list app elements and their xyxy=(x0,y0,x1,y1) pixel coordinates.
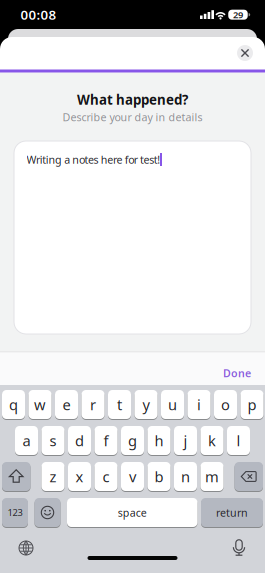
staticText: k xyxy=(208,431,216,450)
button[interactable]: Done xyxy=(223,366,251,380)
staticText: r xyxy=(90,395,96,414)
staticText: w xyxy=(34,395,46,414)
staticText: space xyxy=(118,505,147,520)
button[interactable]: h xyxy=(147,426,170,455)
staticText: z xyxy=(49,467,56,486)
staticText: Done xyxy=(223,366,251,380)
button[interactable]: Emoji xyxy=(34,498,60,527)
staticText: a xyxy=(22,431,30,450)
staticText: p xyxy=(247,395,256,414)
button[interactable]: o xyxy=(214,390,237,419)
button[interactable]: y xyxy=(134,390,157,419)
staticText: s xyxy=(49,431,56,450)
button[interactable]: Delete xyxy=(234,462,263,491)
button[interactable]: j xyxy=(174,426,197,455)
staticText: t xyxy=(117,395,122,414)
button[interactable]: p xyxy=(240,390,263,419)
button[interactable]: z xyxy=(41,462,64,491)
button[interactable]: s xyxy=(41,426,64,455)
staticText: return xyxy=(216,505,248,520)
button[interactable]: Dictation xyxy=(231,539,247,557)
staticText: Writing a notes here for test! xyxy=(26,152,160,167)
staticText: Describe your day in details xyxy=(62,110,202,124)
staticText: e xyxy=(62,395,70,414)
button[interactable]: c xyxy=(94,462,117,491)
button[interactable]: Shift xyxy=(2,462,30,491)
staticText: q xyxy=(9,395,18,414)
button[interactable]: Next keyboard xyxy=(18,540,34,556)
button[interactable]: 123 xyxy=(2,498,28,527)
button[interactable]: e xyxy=(55,390,78,419)
button[interactable]: r xyxy=(81,390,104,419)
button[interactable]: g xyxy=(121,426,144,455)
button[interactable]: l xyxy=(227,426,250,455)
staticText: l xyxy=(236,431,240,450)
button[interactable]: Close xyxy=(237,45,253,61)
staticText: What happened? xyxy=(77,91,188,108)
button[interactable]: v xyxy=(121,462,144,491)
staticText: c xyxy=(102,467,109,486)
staticText: j xyxy=(183,431,187,450)
button[interactable]: space xyxy=(67,498,197,527)
button[interactable]: x xyxy=(68,462,91,491)
staticText: g xyxy=(128,431,137,450)
button[interactable]: q xyxy=(2,390,25,419)
button[interactable]: i xyxy=(187,390,210,419)
staticText: 00:08 xyxy=(20,6,56,23)
staticText: d xyxy=(75,431,84,450)
staticText: b xyxy=(154,467,163,486)
staticText: f xyxy=(103,431,108,450)
button[interactable]: return xyxy=(201,498,263,527)
button[interactable]: u xyxy=(161,390,184,419)
staticText: i xyxy=(197,395,201,414)
staticText: y xyxy=(142,395,149,414)
button[interactable]: w xyxy=(28,390,51,419)
staticText: m xyxy=(205,467,219,486)
staticText: 123 xyxy=(7,506,22,519)
staticText: n xyxy=(181,467,190,486)
button[interactable]: a xyxy=(15,426,38,455)
staticText: u xyxy=(168,395,177,414)
button[interactable]: d xyxy=(68,426,91,455)
button[interactable]: b xyxy=(147,462,170,491)
button[interactable]: f xyxy=(94,426,117,455)
staticText: x xyxy=(75,467,83,486)
staticText: h xyxy=(154,431,163,450)
button[interactable]: m xyxy=(200,462,223,491)
button[interactable]: n xyxy=(174,462,197,491)
button[interactable]: k xyxy=(200,426,223,455)
staticText: v xyxy=(129,467,136,486)
staticText: o xyxy=(221,395,230,414)
staticText: 29 xyxy=(233,8,243,21)
button[interactable]: t xyxy=(108,390,131,419)
